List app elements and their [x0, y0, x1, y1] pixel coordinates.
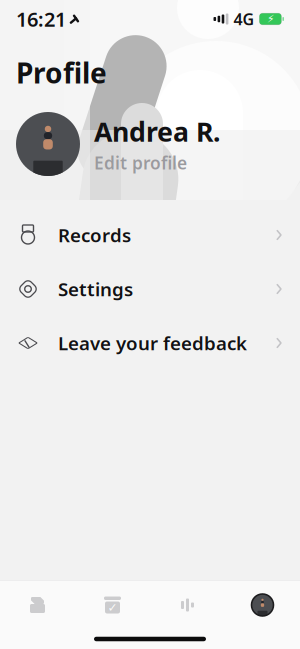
staticText: 4G [233, 8, 254, 30]
staticText: Records [58, 223, 131, 247]
staticText: ✓ [107, 601, 117, 614]
button[interactable]: Edit profile [94, 151, 187, 174]
staticText: ⚡︎ [267, 13, 274, 25]
staticText: Edit profile [94, 151, 187, 174]
button[interactable]: Settings [0, 262, 300, 316]
button[interactable]: Records [0, 208, 300, 262]
button[interactable]: Workouts [75, 581, 150, 629]
staticText: Settings [58, 277, 133, 301]
button[interactable]: Home [0, 581, 75, 629]
staticText: 16:21 [16, 6, 66, 32]
button[interactable]: Profile [225, 581, 300, 629]
staticText: Andrea R. [94, 114, 220, 149]
staticText: Leave your feedback [58, 331, 247, 355]
staticText: Profile [16, 54, 107, 91]
button[interactable]: Leave your feedback [0, 316, 300, 370]
button[interactable]: Statistics [150, 581, 225, 629]
